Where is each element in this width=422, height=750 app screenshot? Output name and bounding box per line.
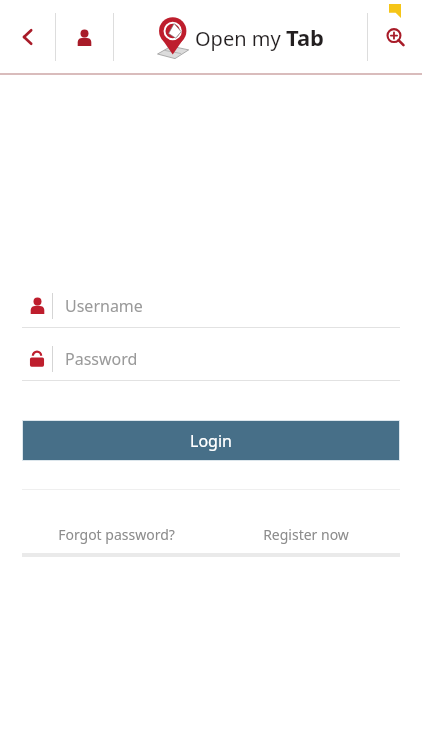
staticText: Login — [190, 430, 232, 452]
button[interactable]: Forgot password? — [22, 525, 211, 544]
button[interactable]: Back — [0, 0, 55, 74]
button[interactable]: Account — [56, 0, 113, 74]
button[interactable]: Register now — [211, 525, 400, 544]
button[interactable]: Login — [22, 420, 400, 461]
staticText: Register now — [263, 525, 349, 544]
button[interactable]: Search — [368, 0, 422, 74]
staticText: Password — [65, 348, 138, 370]
staticText: Tab — [286, 22, 325, 52]
staticText: Username — [65, 295, 143, 317]
staticText: Forgot password? — [58, 525, 175, 544]
staticText: Open my — [195, 25, 286, 52]
button[interactable]: Password field — [22, 338, 400, 379]
button[interactable]: Username field — [22, 285, 400, 326]
